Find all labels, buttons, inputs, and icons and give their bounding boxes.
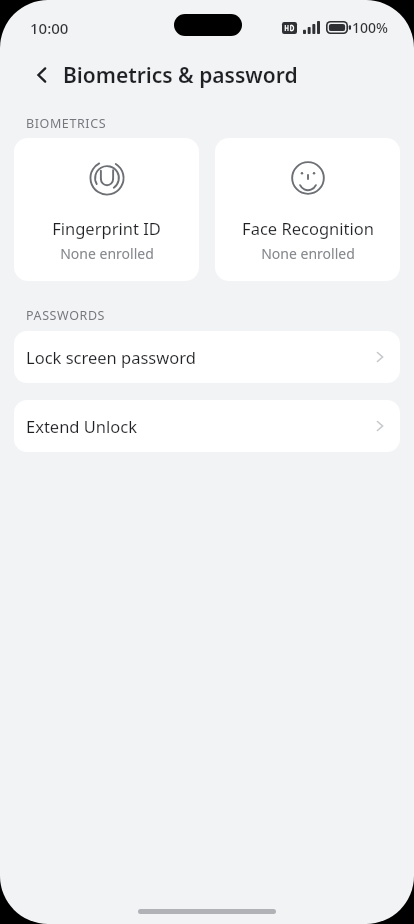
staticText: Fingerprint ID bbox=[52, 217, 161, 239]
staticText: Lock screen password bbox=[26, 346, 372, 368]
staticText: None enrolled bbox=[261, 244, 355, 263]
staticText: BIOMETRICS bbox=[26, 115, 107, 132]
button[interactable]: Fingerprint ID bbox=[14, 138, 199, 281]
button[interactable]: Extend Unlock bbox=[14, 400, 400, 452]
button[interactable]: Back bbox=[22, 55, 62, 95]
button[interactable]: Lock screen password bbox=[14, 331, 400, 383]
staticText: PASSWORDS bbox=[26, 307, 106, 324]
staticText: Face Recognition bbox=[242, 217, 374, 239]
staticText: 10:00 bbox=[30, 18, 69, 38]
staticText: None enrolled bbox=[60, 244, 154, 263]
button[interactable]: Face Recognition bbox=[215, 138, 400, 281]
staticText: Extend Unlock bbox=[26, 415, 372, 437]
staticText: 100% bbox=[352, 18, 388, 37]
staticText: Biometrics & password bbox=[63, 61, 298, 90]
